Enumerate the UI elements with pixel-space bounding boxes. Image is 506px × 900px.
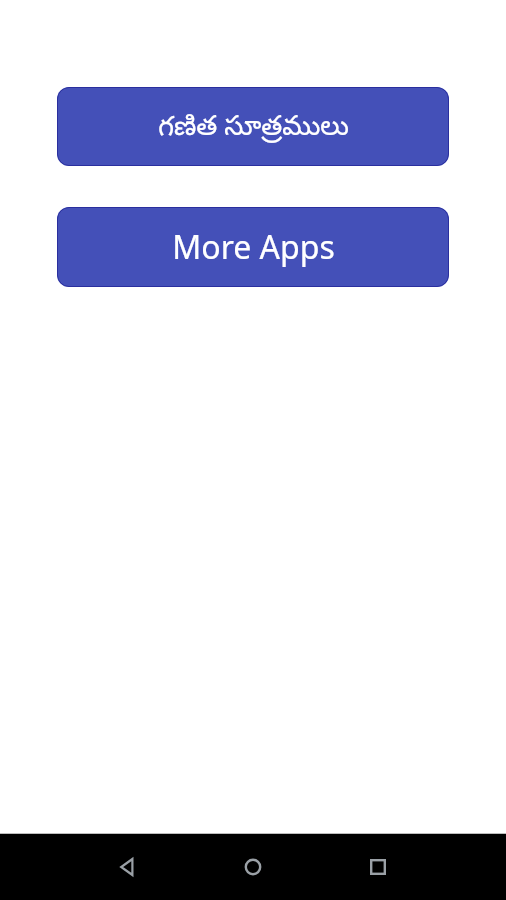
button[interactable]: More Apps bbox=[57, 207, 449, 287]
staticText: గణిత సూత్రములు bbox=[158, 106, 349, 148]
button[interactable]: Recent apps bbox=[354, 843, 402, 891]
button[interactable]: గణిత సూత్రములు bbox=[57, 87, 449, 166]
button[interactable]: Home bbox=[229, 843, 277, 891]
button[interactable]: Back bbox=[104, 843, 152, 891]
staticText: More Apps bbox=[172, 225, 335, 269]
